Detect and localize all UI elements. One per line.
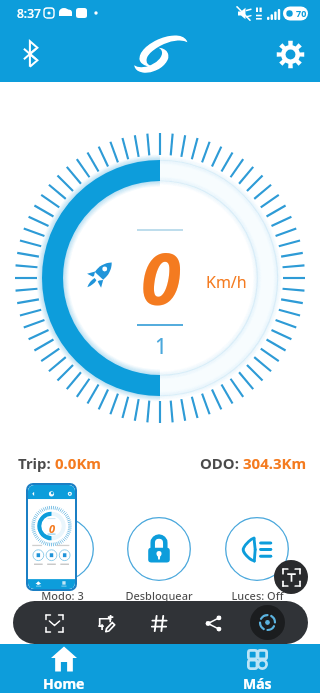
button[interactable]: Luces: Off [212,517,302,603]
staticText: Home [43,674,85,693]
button[interactable]: Lens [250,605,285,640]
button[interactable]: Settings [268,32,312,76]
button[interactable]: Desbloquear [114,517,204,603]
staticText: Desbloquear [125,588,193,603]
button[interactable]: Select text [274,560,308,594]
staticText: 0 [141,228,181,326]
button[interactable]: Share [199,609,227,637]
button[interactable]: Bluetooth [8,32,52,76]
staticText: 1 [155,332,168,361]
button[interactable]: Más [211,644,303,693]
button[interactable]: 0 [26,483,77,591]
staticText: Más [243,674,272,693]
staticText: Km/h [206,271,247,293]
staticText: Luces: Off [231,588,284,603]
button[interactable]: Modo: 3 [17,517,107,603]
staticText: 304.3Km [243,453,307,473]
button[interactable]: Markup [92,609,120,637]
staticText: 70 [296,7,307,19]
staticText: 0 [49,521,56,536]
staticText: 0.0Km [55,453,101,473]
staticText: ODO: [200,453,243,473]
button[interactable]: Home [18,644,110,693]
staticText: 8:37 [17,5,41,21]
button[interactable]: Crop [40,609,68,637]
staticText: Trip: [18,453,55,473]
staticText: Modo: 3 [41,588,84,603]
button[interactable]: Add text [145,609,173,637]
